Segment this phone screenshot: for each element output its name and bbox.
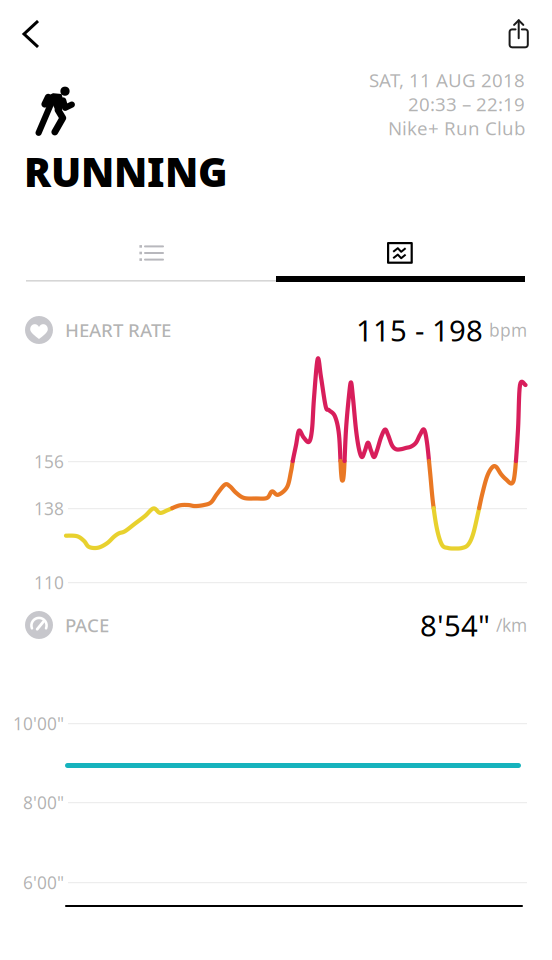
staticText: 8'54" xyxy=(420,605,490,644)
staticText: PACE xyxy=(65,613,109,637)
staticText: /km xyxy=(496,613,527,636)
staticText: Nike+ Run Club xyxy=(388,116,525,140)
button[interactable]: Share xyxy=(508,10,552,54)
staticText: 115 - 198 xyxy=(356,310,483,349)
button[interactable]: Charts xyxy=(276,222,525,282)
staticText: SAT, 11 AUG 2018 xyxy=(369,68,525,92)
staticText: 10'00" xyxy=(13,712,64,735)
staticText: 6'00" xyxy=(23,871,64,894)
staticText: 138 xyxy=(34,497,64,520)
staticText: bpm xyxy=(489,318,527,341)
staticText: 110 xyxy=(34,571,64,594)
button[interactable]: Back xyxy=(10,12,54,56)
staticText: 20:33 – 22:19 xyxy=(408,92,525,116)
button[interactable]: Splits xyxy=(26,222,276,282)
staticText: RUNNING xyxy=(24,145,228,198)
staticText: 8'00" xyxy=(23,791,64,814)
staticText: 156 xyxy=(34,450,64,473)
staticText: HEART RATE xyxy=(65,318,171,342)
